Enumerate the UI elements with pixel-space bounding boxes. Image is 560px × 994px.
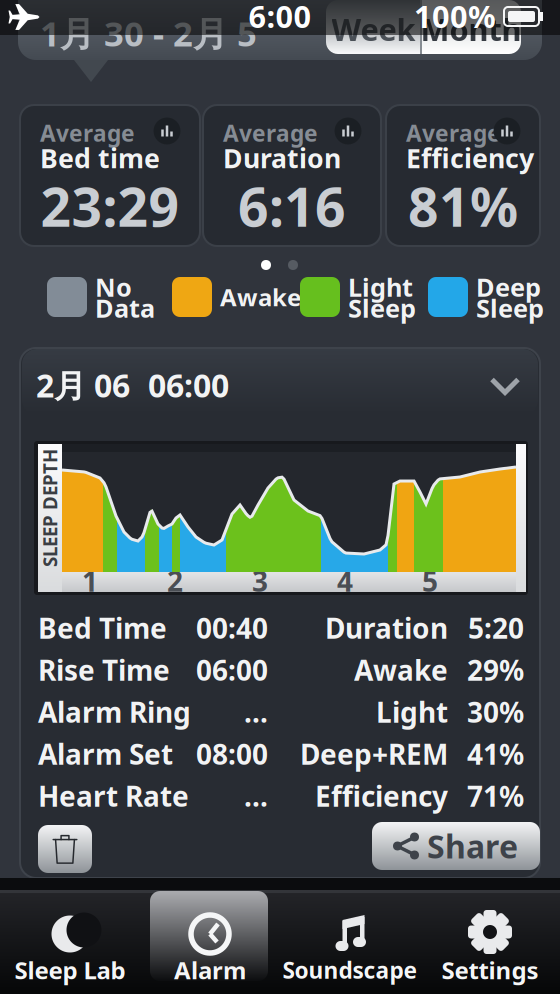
staticText: Duration <box>325 609 448 647</box>
button[interactable]: Average <box>203 105 381 246</box>
staticText: Average <box>406 118 501 148</box>
staticText: 41% <box>467 735 524 773</box>
staticText: Week <box>331 9 415 49</box>
staticText: 00:40 <box>196 609 268 647</box>
button[interactable]: Week <box>326 0 421 54</box>
button[interactable]: Sleep Lab <box>0 886 140 990</box>
staticText: 06:00 <box>196 651 268 689</box>
staticText: Deep <box>476 270 541 304</box>
staticText: 4 <box>337 562 353 600</box>
staticText: 6:00 <box>248 0 311 36</box>
staticText: 5:20 <box>468 609 524 647</box>
staticText: 08:00 <box>196 735 268 773</box>
button[interactable]: Alarm <box>140 886 280 990</box>
staticText: ... <box>244 693 268 731</box>
staticText: 6:16 <box>238 171 346 241</box>
staticText: ... <box>244 777 268 815</box>
staticText: Alarm Ring <box>38 693 191 731</box>
staticText: Average <box>223 118 318 148</box>
button[interactable]: Soundscape <box>280 886 420 990</box>
staticText: Alarm Set <box>38 735 173 773</box>
staticText: 29% <box>467 651 524 689</box>
staticText: 5 <box>422 562 438 600</box>
staticText: 100% <box>414 0 496 36</box>
staticText: Rise Time <box>38 651 170 689</box>
staticText: Bed time <box>40 140 160 176</box>
staticText: Sleep Lab <box>14 954 125 986</box>
button[interactable]: Settings <box>420 886 560 990</box>
button[interactable]: Average <box>20 105 200 246</box>
staticText: 1月 30 - 2月 5 <box>40 10 257 56</box>
staticText: Awake <box>220 281 301 313</box>
staticText: 81% <box>408 171 518 241</box>
staticText: 06:00 <box>148 364 229 406</box>
button[interactable]: Delete <box>38 825 92 873</box>
staticText: 30% <box>467 693 524 731</box>
staticText: Deep+REM <box>300 735 448 773</box>
staticText: Awake <box>354 651 448 689</box>
staticText: No <box>95 270 132 304</box>
staticText: 71% <box>467 777 524 815</box>
staticText: 2 <box>167 562 183 600</box>
staticText: Sleep <box>476 291 544 325</box>
staticText: Heart Rate <box>38 777 189 815</box>
button[interactable]: Month <box>421 0 521 54</box>
staticText: 2月 06 <box>36 364 130 406</box>
staticText: Settings <box>441 954 538 986</box>
staticText: SLEEP DEPTH <box>0 496 109 520</box>
staticText: Efficiency <box>315 777 448 815</box>
staticText: Light <box>348 270 413 304</box>
staticText: Bed Time <box>38 609 167 647</box>
staticText: 23:29 <box>40 171 179 241</box>
button[interactable]: Collapse <box>492 379 518 392</box>
button[interactable]: Average <box>386 105 540 246</box>
staticText: 3 <box>252 562 268 600</box>
staticText: Soundscape <box>282 955 417 985</box>
staticText: Efficiency <box>406 140 534 176</box>
staticText: Light <box>376 693 448 731</box>
button[interactable]: Share <box>372 822 540 870</box>
staticText: Month <box>420 9 521 49</box>
staticText: Duration <box>223 140 341 176</box>
staticText: Average <box>40 118 135 148</box>
staticText: Share <box>427 825 518 867</box>
staticText: Sleep <box>348 291 416 325</box>
staticText: Data <box>95 291 155 325</box>
staticText: 1 <box>82 562 98 600</box>
staticText: Alarm <box>174 954 246 986</box>
